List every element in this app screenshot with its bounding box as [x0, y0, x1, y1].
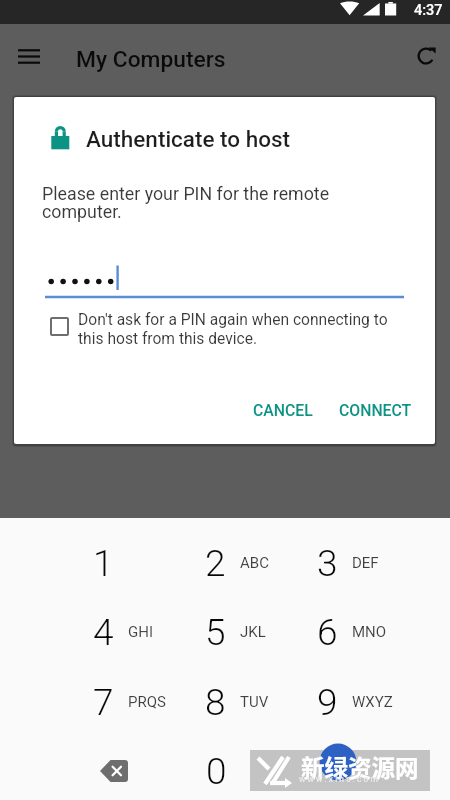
staticText: PRQS — [128, 693, 166, 711]
staticText: Authenticate to host — [86, 126, 291, 152]
staticText: MNO — [352, 623, 387, 641]
button[interactable]: Backspace — [57, 736, 169, 800]
staticText: JKL — [240, 623, 266, 641]
staticText: 新绿资源网 — [301, 750, 419, 784]
button[interactable]: 7 — [47, 667, 159, 737]
button[interactable] — [45, 265, 404, 305]
staticText: WXYZ — [352, 693, 393, 711]
button[interactable]: 6 — [271, 597, 383, 667]
staticText: 0 — [206, 750, 227, 793]
button[interactable]: CONNECT — [330, 393, 421, 428]
button[interactable]: 5 — [159, 597, 271, 667]
staticText: 7 — [93, 681, 114, 724]
button[interactable]: Refresh — [402, 32, 450, 80]
staticText: Don't ask for a PIN again when connectin… — [78, 311, 398, 347]
staticText: 3 — [317, 542, 338, 585]
button[interactable]: 3 — [271, 528, 383, 598]
staticText: 6 — [317, 611, 338, 654]
button[interactable]: CANCEL — [244, 393, 322, 428]
staticText: w w w . x l h s . c o m — [299, 774, 378, 784]
button[interactable]: 9 — [271, 667, 383, 737]
staticText: 4:37 — [414, 2, 443, 19]
button[interactable]: 4 — [47, 597, 159, 667]
staticText: 5 — [205, 611, 226, 654]
button[interactable]: 8 — [159, 667, 271, 737]
staticText: 1 — [93, 542, 114, 585]
staticText: 9 — [317, 681, 338, 724]
button[interactable]: 2 — [159, 528, 271, 598]
button[interactable]: 1 — [47, 528, 159, 598]
staticText: DEF — [352, 554, 379, 572]
staticText: CONNECT — [339, 401, 412, 420]
staticText: TUV — [240, 693, 269, 711]
button[interactable]: Open navigation menu — [5, 32, 53, 80]
staticText: 8 — [205, 681, 226, 724]
staticText: GHI — [128, 623, 153, 641]
staticText: Please enter your PIN for the remote com… — [42, 183, 342, 222]
button[interactable]: 0 — [160, 736, 272, 800]
staticText: 4 — [93, 611, 114, 654]
button[interactable]: Don't ask for a PIN again when connectin… — [50, 311, 398, 347]
staticText: 2 — [205, 542, 226, 585]
staticText: CANCEL — [253, 401, 313, 420]
staticText: ABC — [240, 554, 269, 572]
staticText: My Computers — [76, 46, 226, 73]
